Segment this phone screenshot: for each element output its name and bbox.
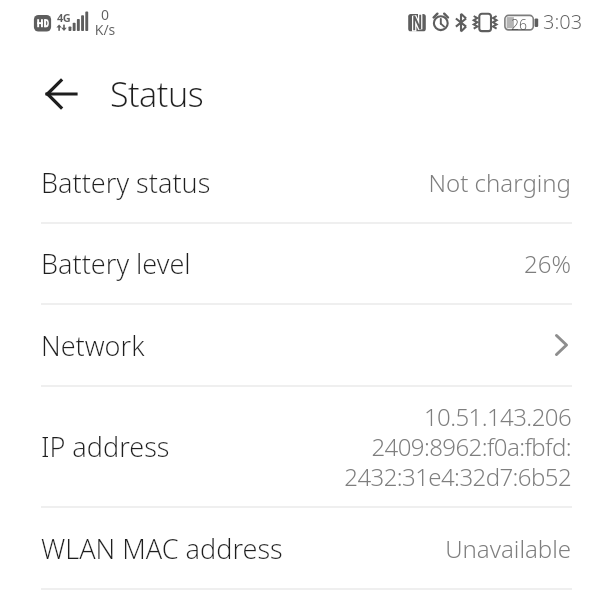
staticText: Battery level	[41, 245, 191, 282]
staticText: IP address	[41, 428, 170, 465]
staticText: 0 K/s	[91, 5, 119, 39]
button[interactable]: Network	[0, 304, 612, 386]
button[interactable]: IP address	[0, 386, 612, 507]
staticText: Network	[41, 327, 145, 364]
staticText: 10.51.143.206 2409:8962:f0a:fbfd: 2432:3…	[344, 400, 571, 493]
staticText: 3:03	[543, 8, 583, 35]
staticText: 26%	[524, 247, 571, 280]
staticText: Not charging	[428, 166, 571, 199]
staticText: Status	[110, 71, 204, 117]
staticText: 26	[511, 15, 527, 34]
button[interactable]: Back	[42, 74, 82, 114]
staticText: WLAN MAC address	[41, 530, 283, 567]
button[interactable]: WLAN MAC address	[0, 507, 612, 589]
staticText: Battery status	[41, 164, 211, 201]
staticText: 4G	[57, 10, 71, 25]
button[interactable]: Battery level	[0, 223, 612, 304]
staticText: Unavailable	[445, 532, 571, 565]
button[interactable]: Battery status	[0, 142, 612, 223]
